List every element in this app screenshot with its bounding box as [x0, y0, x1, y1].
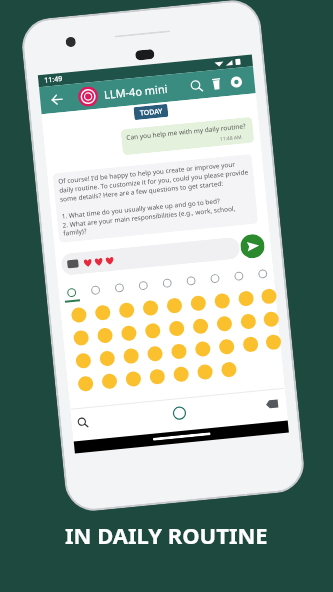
staticText: 11:49	[44, 74, 63, 86]
button[interactable]	[111, 279, 128, 296]
button[interactable]	[231, 267, 247, 284]
button[interactable]	[87, 281, 104, 298]
button[interactable]: Emoji	[172, 405, 187, 421]
button[interactable]: Search emoji	[75, 415, 91, 430]
button[interactable]	[159, 274, 175, 291]
button[interactable]: Delete	[206, 73, 227, 95]
staticText: Can you help me with my daily routine?	[126, 121, 246, 142]
button[interactable]	[63, 283, 80, 301]
staticText: 2. What are your main responsibilities (…	[62, 203, 248, 238]
button[interactable]: Back	[47, 90, 67, 109]
staticText: 11:48 AM	[220, 134, 242, 143]
button[interactable]	[207, 269, 223, 287]
staticText: 1. What time do you usually wake up and …	[61, 196, 220, 221]
button[interactable]	[135, 276, 151, 294]
button[interactable]	[254, 265, 271, 282]
button[interactable]: Search	[186, 75, 208, 97]
button[interactable]: Send	[239, 233, 266, 259]
staticText: IN DAILY ROUTINE	[65, 520, 268, 550]
staticText: TODAY	[140, 106, 163, 118]
button[interactable]: Settings	[225, 71, 247, 93]
button[interactable]	[183, 272, 199, 289]
staticText: LLM-4o mini	[103, 81, 168, 102]
staticText: Of course! I'd be happy to help you crea…	[58, 158, 249, 204]
button[interactable]: Backspace	[264, 396, 280, 412]
button[interactable]	[60, 236, 241, 276]
